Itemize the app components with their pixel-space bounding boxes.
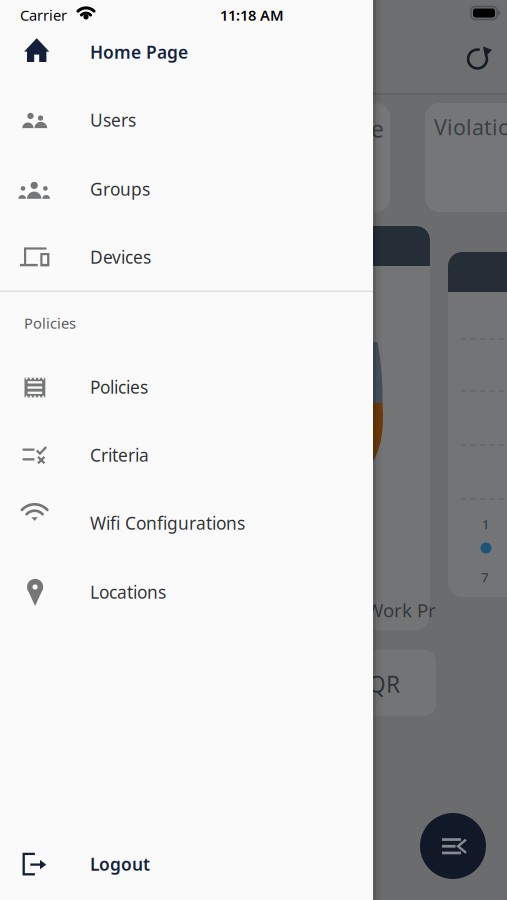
staticText: Work Pr [366,598,436,622]
staticText: Policies [24,313,76,333]
button[interactable]: Wifi Configurations [0,495,356,551]
staticText: Home Page [90,40,188,63]
button[interactable]: Locations [0,564,356,620]
staticText: Users [90,108,136,131]
button[interactable]: Criteria [0,427,356,483]
staticText: Locations [90,580,166,603]
button[interactable]: Close menu [420,813,486,879]
staticText: Criteria [90,443,149,466]
staticText: Policies [90,375,148,398]
button[interactable]: Policies [0,359,356,415]
staticText: e [371,114,384,144]
button[interactable]: Home Page [0,24,356,80]
staticText: 11:18 AM [220,5,284,25]
staticText: Groups [90,177,150,200]
staticText: Logout [90,852,150,875]
button[interactable]: Users [0,92,356,148]
staticText: Violations [434,113,507,141]
staticText: Devices [90,245,151,268]
staticText: QR [368,669,400,699]
staticText: Wifi Configurations [90,511,245,534]
button[interactable]: Logout [0,836,356,892]
staticText: 1 [482,515,490,533]
button[interactable]: Groups [0,161,356,217]
staticText: 7 [481,568,489,586]
button[interactable]: Devices [0,229,356,285]
staticText: Carrier [20,5,67,25]
